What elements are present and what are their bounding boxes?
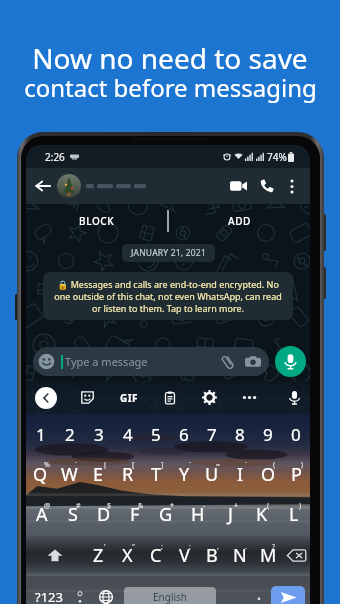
button[interactable]: ?	[254, 535, 282, 576]
button[interactable]: `	[170, 454, 198, 494]
staticText: `	[189, 460, 191, 470]
button[interactable]: Back	[32, 175, 54, 197]
staticText: (	[267, 501, 270, 511]
staticText: 4	[123, 423, 133, 446]
button[interactable]: `	[226, 454, 254, 494]
staticText: ,	[217, 542, 219, 552]
staticText: H	[191, 502, 205, 527]
staticText: Now no need to save	[32, 39, 308, 77]
button[interactable]: #	[57, 494, 88, 535]
staticText: |	[103, 460, 107, 470]
button[interactable]: 6	[170, 414, 198, 454]
staticText: G	[159, 502, 173, 527]
button[interactable]: 0	[282, 414, 310, 454]
staticText: &	[138, 501, 144, 511]
button[interactable]: )	[278, 494, 310, 535]
staticText: 2	[65, 423, 75, 446]
button[interactable]: Voice message	[275, 346, 306, 377]
button[interactable]: Attach	[220, 354, 236, 370]
staticText: %	[44, 460, 50, 470]
button[interactable]: Backspace	[282, 535, 310, 576]
button[interactable]: Comma	[68, 576, 92, 604]
button[interactable]: ADD	[169, 204, 310, 238]
button[interactable]: +	[214, 494, 246, 535]
staticText: #	[76, 501, 81, 511]
staticText: F	[130, 502, 140, 527]
button[interactable]: [	[113, 454, 142, 494]
button[interactable]: 2	[55, 414, 84, 454]
button[interactable]: Change language	[92, 576, 120, 604]
staticText: 7	[207, 423, 217, 446]
button[interactable]: Clipboard	[163, 391, 177, 405]
staticText: E	[93, 462, 104, 487]
staticText: 3	[94, 423, 104, 446]
button[interactable]: "	[113, 535, 142, 576]
staticText: I	[237, 462, 244, 487]
button[interactable]: English	[124, 587, 216, 604]
button[interactable]: Video call	[226, 174, 250, 198]
button[interactable]: ,	[198, 535, 226, 576]
button[interactable]: Collapse keyboard toolbar	[35, 387, 57, 409]
staticText: [	[132, 460, 135, 470]
staticText: BLOCK	[79, 214, 115, 228]
button[interactable]: Type a message	[33, 347, 269, 376]
staticText: S	[68, 502, 78, 527]
button[interactable]: '	[84, 535, 113, 576]
button[interactable]: 8	[226, 414, 254, 454]
button[interactable]: 1	[26, 414, 55, 454]
button[interactable]: Period	[247, 576, 271, 604]
button[interactable]: 7	[198, 414, 226, 454]
staticText: 6	[179, 423, 189, 446]
staticText: *	[170, 501, 174, 511]
staticText: U	[205, 462, 219, 487]
button[interactable]: 4	[113, 414, 142, 454]
button[interactable]: GIF	[120, 391, 138, 405]
button[interactable]: (	[246, 494, 278, 535]
button[interactable]: -	[182, 494, 214, 535]
staticText: (	[273, 460, 276, 470]
staticText: English	[153, 590, 188, 604]
button[interactable]: =	[198, 454, 226, 494]
button[interactable]: ;	[142, 535, 170, 576]
staticText: 8	[235, 423, 245, 446]
staticText: ?	[272, 542, 276, 552]
staticText: X	[122, 543, 133, 568]
button[interactable]: Call	[256, 175, 278, 197]
button[interactable]: Shift	[26, 535, 84, 576]
button[interactable]: More options	[282, 176, 302, 196]
button[interactable]: Voice input	[287, 390, 302, 405]
staticText: ?123	[35, 588, 63, 604]
staticText: A	[36, 502, 48, 527]
button[interactable]: :	[170, 535, 198, 576]
button[interactable]: .	[226, 535, 254, 576]
button[interactable]: |	[84, 454, 113, 494]
button[interactable]: `	[55, 454, 84, 494]
button[interactable]: *	[150, 494, 182, 535]
staticText: ADD	[228, 214, 251, 228]
button[interactable]: More	[242, 390, 257, 405]
button[interactable]: 5	[142, 414, 170, 454]
staticText: Type a message	[65, 354, 148, 369]
staticText: 1	[36, 423, 46, 446]
button[interactable]: %	[26, 454, 55, 494]
button[interactable]: $	[88, 494, 119, 535]
button[interactable]: Send	[271, 586, 305, 604]
button[interactable]: @	[26, 494, 57, 535]
button[interactable]: &	[119, 494, 150, 535]
button[interactable]: )	[282, 454, 310, 494]
button[interactable]: Stickers	[80, 390, 95, 405]
button[interactable]: Camera	[245, 354, 261, 370]
button[interactable]: ?123	[30, 576, 68, 604]
button[interactable]: ]	[142, 454, 170, 494]
staticText: B	[206, 543, 218, 568]
button[interactable]: (	[254, 454, 282, 494]
staticText: J	[228, 502, 233, 527]
staticText: M	[260, 543, 277, 568]
staticText: @	[44, 501, 51, 511]
button[interactable]: 9	[254, 414, 282, 454]
button[interactable]: BLOCK	[26, 204, 167, 238]
button[interactable]: 3	[84, 414, 113, 454]
staticText: contact before messaging	[24, 71, 317, 104]
button[interactable]: Settings	[202, 390, 217, 405]
staticText: 🔒 Messages and calls are end-to-end encr…	[50, 278, 286, 314]
